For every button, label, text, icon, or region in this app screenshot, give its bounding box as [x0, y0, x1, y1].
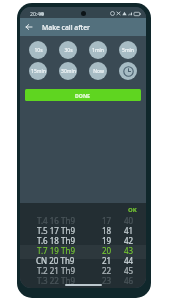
- staticText: 43: [124, 245, 134, 255]
- staticText: 30min: [61, 68, 76, 75]
- staticText: 10s: [34, 47, 43, 54]
- button[interactable]: T.6 18 Th9: [20, 235, 146, 245]
- staticText: 15min: [31, 68, 46, 75]
- staticText: Now: [93, 68, 104, 75]
- staticText: 19: [102, 235, 112, 245]
- staticText: 46: [124, 275, 134, 285]
- button[interactable]: 30s: [59, 41, 77, 59]
- button[interactable]: T.7 19 Th9: [20, 245, 146, 255]
- button[interactable]: T.4 16 Th9: [20, 215, 146, 225]
- staticText: Make call after: [42, 23, 90, 32]
- staticText: 20:44: [30, 10, 44, 17]
- staticText: 44: [124, 255, 134, 265]
- button[interactable]: CN 20 Th9: [20, 255, 146, 265]
- staticText: 45: [124, 265, 134, 275]
- staticText: T.4 16 Th9: [37, 215, 75, 225]
- staticText: 1min: [92, 47, 104, 54]
- staticText: 23: [102, 275, 112, 285]
- staticText: T.2 21 Th9: [37, 265, 75, 275]
- button[interactable]: DONE: [25, 89, 141, 101]
- staticText: 40: [124, 215, 134, 225]
- button[interactable]: Back: [20, 18, 38, 36]
- button[interactable]: 1min: [89, 41, 107, 59]
- staticText: 20: [102, 245, 112, 255]
- button[interactable]: T.5 17 Th9: [20, 225, 146, 235]
- button[interactable]: T.3 22 Th9: [20, 275, 146, 285]
- staticText: OK: [128, 206, 137, 214]
- staticText: T.6 18 Th9: [37, 235, 75, 245]
- staticText: T.7 19 Th9: [37, 245, 75, 255]
- button[interactable]: OK: [127, 205, 138, 215]
- staticText: 41: [124, 225, 134, 235]
- button[interactable]: 5min: [119, 41, 137, 59]
- staticText: 17: [102, 215, 112, 225]
- button[interactable]: Now: [89, 62, 107, 80]
- button[interactable]: 15min: [29, 62, 47, 80]
- button[interactable]: T.2 21 Th9: [20, 265, 146, 275]
- staticText: 42: [124, 235, 134, 245]
- button[interactable]: 30min: [59, 62, 77, 80]
- button[interactable]: Pick custom time: [119, 62, 137, 80]
- staticText: 18: [102, 225, 112, 235]
- staticText: T.3 22 Th9: [37, 275, 75, 285]
- button[interactable]: 10s: [29, 41, 47, 59]
- staticText: 5min: [122, 47, 134, 54]
- staticText: T.5 17 Th9: [37, 225, 75, 235]
- staticText: 22: [102, 265, 112, 275]
- staticText: CN 20 Th9: [36, 255, 75, 265]
- staticText: DONE: [75, 92, 91, 99]
- staticText: 30s: [64, 47, 73, 54]
- staticText: 21: [102, 255, 112, 265]
